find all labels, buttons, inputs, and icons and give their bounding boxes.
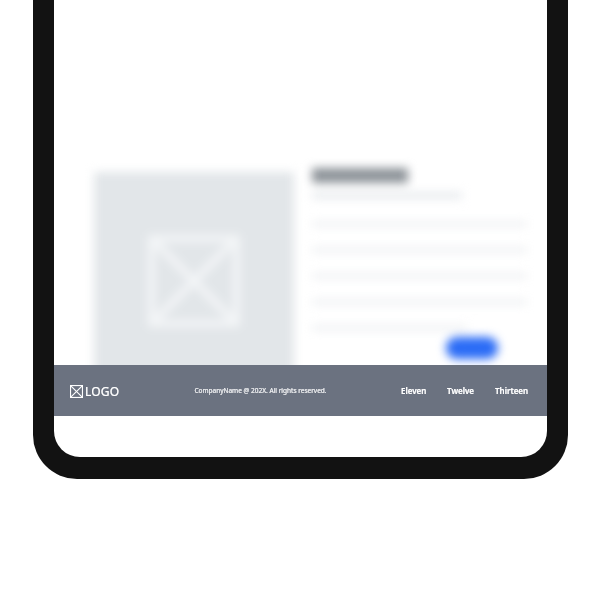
button[interactable]: Primary action (446, 337, 498, 359)
staticText: Twelve (447, 385, 475, 396)
button[interactable]: LOGO (68, 377, 122, 405)
staticText: CompanyName @ 202X. All rights reserved. (194, 386, 327, 395)
button[interactable]: Thirteen (493, 379, 531, 402)
button[interactable]: Hero image placeholder (94, 172, 294, 389)
button[interactable]: Twelve (445, 379, 477, 402)
staticText: LOGO (85, 383, 120, 399)
button[interactable]: Eleven (399, 379, 429, 402)
staticText: Eleven (401, 385, 427, 396)
staticText: Thirteen (495, 385, 529, 396)
